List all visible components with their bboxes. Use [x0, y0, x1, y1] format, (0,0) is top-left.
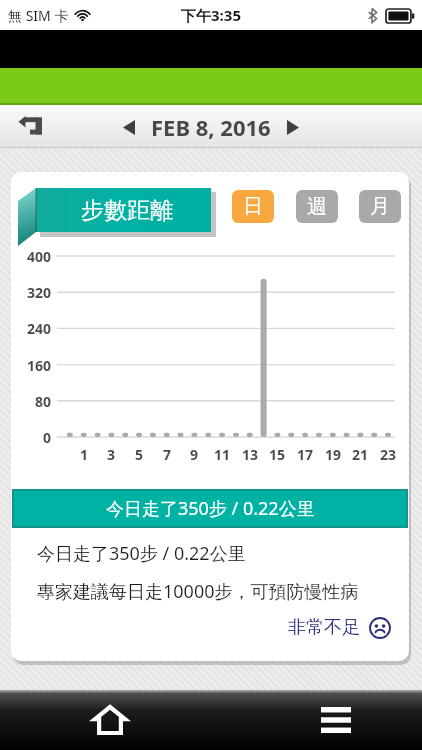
button[interactable]: 月 — [359, 190, 401, 223]
staticText: 日 — [243, 194, 263, 219]
staticText: 無 SIM 卡 — [8, 6, 69, 25]
staticText: 240 — [11, 319, 51, 338]
button[interactable]: 今日走了350步 / 0.22公里 — [14, 491, 406, 526]
staticText: 11 — [210, 445, 234, 464]
staticText: 步數距離 — [81, 196, 173, 225]
staticText: 今日走了350步 / 0.22公里 — [37, 541, 246, 566]
staticText: 23 — [376, 445, 400, 464]
staticText: 非常不足 — [288, 616, 360, 639]
staticText: 19 — [321, 445, 345, 464]
staticText: 0 — [11, 428, 51, 447]
staticText: 80 — [11, 392, 51, 411]
button[interactable]: 日 — [232, 190, 274, 223]
button[interactable]: 週 — [296, 190, 338, 223]
staticText: 7 — [155, 445, 179, 464]
staticText: 9 — [182, 445, 206, 464]
staticText: 320 — [11, 283, 51, 302]
staticText: 17 — [293, 445, 317, 464]
staticText: FEB 8, 2016 — [151, 112, 271, 142]
staticText: 3 — [99, 445, 123, 464]
staticText: 下午3:35 — [181, 5, 241, 25]
staticText: 15 — [265, 445, 289, 464]
staticText: 週 — [307, 194, 327, 219]
staticText: 400 — [11, 247, 51, 266]
button[interactable]: 步數距離 — [18, 186, 216, 246]
staticText: 21 — [348, 445, 372, 464]
button[interactable]: Home — [82, 692, 138, 748]
button[interactable]: Back — [8, 105, 52, 148]
staticText: 5 — [127, 445, 151, 464]
staticText: 1 — [72, 445, 96, 464]
button[interactable]: Menu — [308, 692, 364, 748]
staticText: 月 — [370, 194, 390, 219]
staticText: 160 — [11, 356, 51, 375]
staticText: 今日走了350步 / 0.22公里 — [106, 496, 315, 521]
button[interactable]: Next day — [275, 109, 311, 145]
staticText: 13 — [238, 445, 262, 464]
staticText: 專家建議每日走10000步，可預防慢性病 — [37, 579, 359, 604]
button[interactable]: Previous day — [111, 109, 147, 145]
